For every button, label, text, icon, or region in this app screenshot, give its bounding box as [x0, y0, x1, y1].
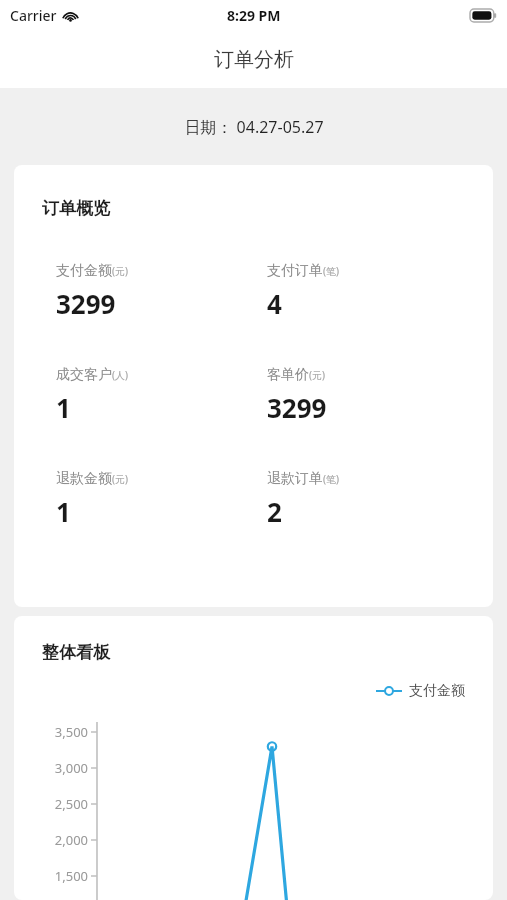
- staticText: 退款订单(笔): [267, 470, 339, 488]
- button[interactable]: 退款订单(笔): [267, 470, 493, 529]
- staticText: 3299: [56, 286, 116, 321]
- button[interactable]: 日期： 04.27-05.27: [0, 88, 507, 165]
- staticText: 2,500: [40, 795, 88, 813]
- staticText: 1: [56, 390, 71, 425]
- button[interactable]: 退款金额(元): [56, 470, 253, 529]
- staticText: 2: [267, 494, 282, 529]
- staticText: 日期： 04.27-05.27: [184, 116, 324, 138]
- button[interactable]: 支付订单(笔): [267, 262, 493, 321]
- staticText: 客单价(元): [267, 366, 325, 384]
- staticText: 4: [267, 286, 282, 321]
- staticText: 3,000: [40, 759, 88, 777]
- staticText: 退款金额(元): [56, 470, 128, 488]
- staticText: 8:29 PM: [227, 6, 281, 25]
- staticText: 整体看板: [42, 642, 110, 663]
- staticText: 订单分析: [214, 47, 294, 72]
- staticText: 3,500: [40, 723, 88, 741]
- staticText: 支付金额(元): [56, 262, 128, 280]
- staticText: 支付订单(笔): [267, 262, 339, 280]
- button[interactable]: 支付金额: [376, 682, 465, 700]
- staticText: 3299: [267, 390, 327, 425]
- staticText: 1: [56, 494, 71, 529]
- staticText: 支付金额: [409, 682, 465, 700]
- staticText: 1,500: [40, 867, 88, 885]
- button[interactable]: 客单价(元): [267, 366, 493, 425]
- staticText: Carrier: [10, 6, 57, 25]
- staticText: 2,000: [40, 831, 88, 849]
- button[interactable]: 成交客户(人): [56, 366, 253, 425]
- button[interactable]: 支付金额(元): [56, 262, 253, 321]
- staticText: 订单概览: [42, 198, 110, 219]
- staticText: 成交客户(人): [56, 366, 128, 384]
